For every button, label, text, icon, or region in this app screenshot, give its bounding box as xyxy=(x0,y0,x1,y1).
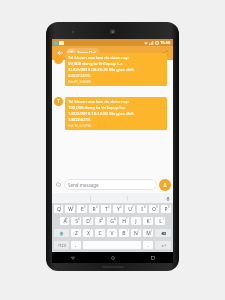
staticText: Tong Dai xyxy=(77,50,96,56)
button[interactable]: T xyxy=(101,205,111,213)
staticText: O xyxy=(152,206,156,213)
staticText: H xyxy=(122,218,126,225)
button[interactable]: P xyxy=(161,205,171,213)
staticText: % xyxy=(101,217,104,221)
staticText: T xyxy=(105,206,108,213)
staticText: J xyxy=(135,218,137,225)
button[interactable]: G xyxy=(107,217,117,225)
staticText: T xyxy=(70,50,73,57)
button[interactable]: D xyxy=(83,217,93,225)
button[interactable]: Y xyxy=(113,205,123,213)
button[interactable]: . xyxy=(143,241,153,249)
staticText: M xyxy=(146,230,151,237)
staticText: " xyxy=(90,229,92,233)
staticText: E xyxy=(81,206,84,213)
staticText: Y xyxy=(117,206,120,213)
staticText: ; xyxy=(115,229,116,233)
button[interactable]: Z xyxy=(71,229,81,237)
staticText: 8 xyxy=(144,205,146,209)
staticText: L xyxy=(159,218,162,225)
staticText: / xyxy=(151,229,152,233)
staticText: N xyxy=(134,230,138,237)
button[interactable]: L xyxy=(155,217,165,225)
button[interactable]: Recents xyxy=(133,252,173,263)
staticText: 15:50 xyxy=(160,40,171,45)
button[interactable]: ?123 xyxy=(54,241,69,249)
button[interactable]: Send xyxy=(159,179,171,191)
staticText: W xyxy=(68,206,73,213)
staticText: Feb 14, 6:14PM xyxy=(68,124,91,128)
staticText: ! xyxy=(127,229,128,233)
staticText: ' xyxy=(79,229,80,233)
button[interactable]: R xyxy=(89,205,99,213)
button[interactable]: N xyxy=(131,229,141,237)
button[interactable]: Shift xyxy=(54,229,69,237)
staticText: A xyxy=(63,218,67,225)
button[interactable]: Back xyxy=(55,48,65,58)
button[interactable]: Attach xyxy=(54,180,63,189)
button[interactable]: H xyxy=(119,217,129,225)
staticText: 6 xyxy=(120,205,122,209)
button[interactable]: T xyxy=(66,48,100,58)
button[interactable]: Home xyxy=(93,252,133,263)
staticText: 3 xyxy=(84,205,86,209)
button[interactable]: Tai khoan cua ban da duoc nap 100,000 do… xyxy=(65,97,167,130)
staticText: Send message xyxy=(68,182,99,188)
staticText: Tai khoan cua ban da duoc nap 100,000 do… xyxy=(68,99,135,123)
staticText: ? xyxy=(138,229,140,233)
staticText: B xyxy=(122,230,126,237)
staticText: 4 xyxy=(96,205,98,209)
staticText: 2 xyxy=(72,205,74,209)
button[interactable]: Back xyxy=(52,252,93,263)
button[interactable]: O xyxy=(149,205,159,213)
button[interactable]: W xyxy=(65,205,75,213)
button[interactable]: Q xyxy=(54,205,63,213)
staticText: + xyxy=(150,217,152,221)
staticText: 5 xyxy=(108,205,110,209)
staticText: U xyxy=(128,206,132,213)
staticText: Z xyxy=(75,230,78,237)
button[interactable]: I xyxy=(137,205,147,213)
staticText: G xyxy=(110,218,114,225)
staticText: T xyxy=(57,98,60,105)
button[interactable]: E xyxy=(77,205,87,213)
staticText: P xyxy=(164,206,168,213)
button[interactable]: F xyxy=(95,217,105,225)
button[interactable]: J xyxy=(131,217,141,225)
staticText: . xyxy=(147,242,149,249)
staticText: F xyxy=(99,218,102,225)
staticText: C xyxy=(98,230,102,237)
button[interactable]: Voice input xyxy=(164,195,171,202)
staticText: # xyxy=(78,217,80,221)
button[interactable]: Share xyxy=(160,48,170,58)
staticText: I xyxy=(141,206,143,213)
staticText: : xyxy=(103,229,104,233)
button[interactable]: C xyxy=(95,229,105,237)
staticText: S xyxy=(75,218,78,225)
staticText: K xyxy=(146,218,150,225)
button[interactable]: U xyxy=(125,205,135,213)
button[interactable]: B xyxy=(119,229,129,237)
button[interactable]: Send message xyxy=(64,179,157,190)
staticText: , xyxy=(75,242,77,249)
button[interactable]: Tai khoan cua ban da duoc nap 50,000 don… xyxy=(65,53,167,86)
button[interactable]: Enter xyxy=(155,241,171,249)
staticText: R xyxy=(92,206,96,213)
button[interactable]: X xyxy=(83,229,93,237)
button[interactable]: A xyxy=(60,217,69,225)
staticText: V xyxy=(110,230,114,237)
staticText: 0 xyxy=(168,205,170,209)
button[interactable]: V xyxy=(107,229,117,237)
staticText: * xyxy=(126,217,128,221)
button[interactable]: , xyxy=(71,241,81,249)
staticText: ( xyxy=(163,217,164,221)
staticText: & xyxy=(114,217,116,221)
button[interactable]: M xyxy=(143,229,153,237)
staticText: - xyxy=(139,217,140,221)
button[interactable]: K xyxy=(143,217,153,225)
button[interactable]: Backspace xyxy=(155,229,171,237)
staticText: ?123 xyxy=(58,243,66,248)
button[interactable]: S xyxy=(71,217,81,225)
staticText: Q xyxy=(57,206,61,213)
